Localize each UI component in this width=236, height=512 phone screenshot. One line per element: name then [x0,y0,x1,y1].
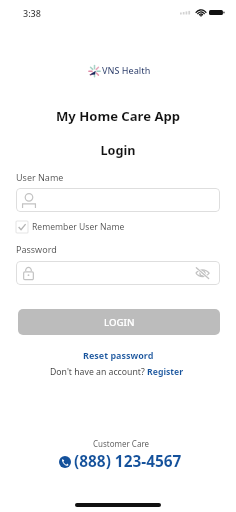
button[interactable]: Show password [16,261,220,285]
staticText: LOGIN [104,316,135,329]
staticText: Don't have an account? [50,366,147,378]
button[interactable]: (888) 123-4567 [2,451,236,472]
button[interactable] [16,188,220,212]
staticText: Register [147,366,184,378]
staticText: Reset password [83,349,154,361]
button[interactable]: LOGIN [18,309,220,335]
staticText: VNS Health [102,64,151,76]
staticText: My Home Care App [0,107,236,125]
staticText: Remember User Name [32,221,125,233]
staticText: 3:38 [23,7,41,19]
button[interactable]: Show password [195,267,210,279]
staticText: Login [0,141,236,158]
staticText: Password [16,243,57,255]
staticText: User Name [16,171,64,183]
button[interactable]: Register [147,362,184,382]
staticText: Customer Care [3,438,236,449]
other: VNS Health logo [2,64,236,76]
staticText: (888) 123-4567 [74,451,182,472]
button[interactable]: Reset password [75,343,162,367]
button[interactable]: Remember User Name [16,221,125,233]
